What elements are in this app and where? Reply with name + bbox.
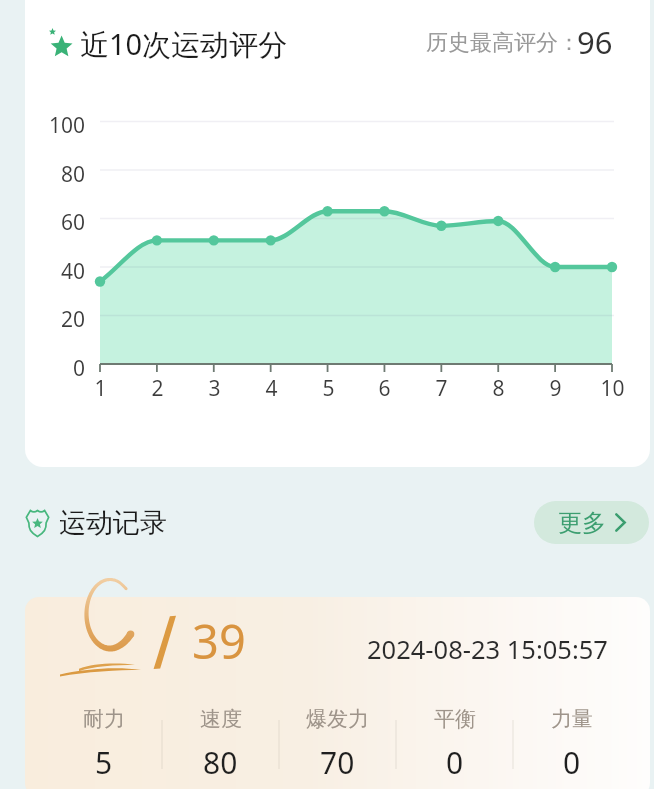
staticText: 0 bbox=[72, 354, 85, 383]
staticText: 速度 bbox=[200, 706, 242, 732]
staticText: 100 bbox=[48, 111, 85, 140]
staticText: 历史最高评分： bbox=[426, 29, 580, 57]
staticText: 40 bbox=[60, 257, 85, 286]
staticText: 1 bbox=[94, 374, 107, 403]
staticText: 0 bbox=[563, 742, 581, 783]
staticText: 2 bbox=[151, 374, 164, 403]
staticText: 爆发力 bbox=[306, 706, 369, 732]
staticText: 70 bbox=[320, 742, 355, 783]
button[interactable]: 2024-08-23 15:05:57 bbox=[25, 597, 650, 789]
staticText: 4 bbox=[265, 374, 278, 403]
staticText: 力量 bbox=[551, 706, 593, 732]
staticText: 39 bbox=[192, 609, 246, 673]
staticText: 5 bbox=[95, 742, 113, 783]
staticText: 2024-08-23 15:05:57 bbox=[367, 632, 608, 667]
staticText: 5 bbox=[322, 374, 335, 403]
staticText: 7 bbox=[435, 374, 448, 403]
staticText: 0 bbox=[446, 742, 464, 783]
staticText: 20 bbox=[60, 305, 85, 334]
staticText: 平衡 bbox=[434, 706, 476, 732]
staticText: 近10次运动评分 bbox=[80, 24, 288, 64]
staticText: 8 bbox=[492, 374, 505, 403]
button[interactable]: 更多 bbox=[534, 501, 649, 544]
staticText: 运动记录 bbox=[59, 506, 167, 540]
staticText: 3 bbox=[208, 374, 221, 403]
staticText: 更多 bbox=[558, 508, 606, 538]
staticText: 10 bbox=[600, 374, 625, 403]
staticText: 60 bbox=[60, 208, 85, 237]
staticText: 96 bbox=[577, 21, 613, 63]
staticText: 80 bbox=[60, 160, 85, 189]
staticText: 耐力 bbox=[83, 706, 125, 732]
staticText: 80 bbox=[203, 742, 238, 783]
staticText: 9 bbox=[549, 374, 562, 403]
staticText: 6 bbox=[378, 374, 391, 403]
